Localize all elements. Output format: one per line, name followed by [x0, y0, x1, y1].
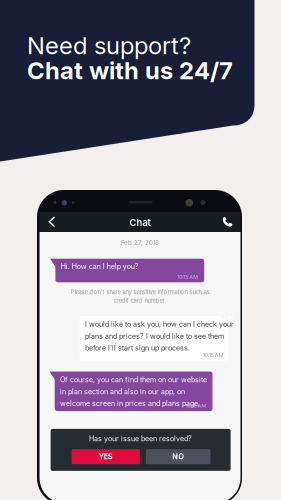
staticText: 10:15 AM: [203, 352, 224, 358]
staticText: before I'll start sign up process.: [85, 344, 190, 352]
staticText: welcome screen in prices and plans page.: [60, 399, 200, 408]
button[interactable]: NO: [146, 449, 210, 464]
staticText: 10:16 AM: [185, 402, 206, 409]
staticText: Hi. How can I help you?: [61, 262, 139, 271]
staticText: in plan section and also in our app, on: [60, 387, 185, 396]
button[interactable]: Call: [216, 211, 238, 232]
staticText: YES: [99, 452, 113, 461]
staticText: Need support?: [27, 31, 191, 60]
staticText: Chat with us 24/7: [27, 56, 233, 85]
staticText: NO: [172, 452, 184, 461]
button[interactable]: YES: [72, 449, 140, 464]
staticText: credit card number.: [113, 297, 166, 304]
staticText: Of course, you can find them on our webs…: [60, 375, 207, 384]
button[interactable]: Back: [41, 211, 63, 232]
staticText: plans and prices? I would like to see th…: [85, 332, 224, 340]
staticText: Feb 27, 2018: [121, 239, 159, 246]
staticText: 10:15 AM: [177, 274, 198, 280]
staticText: Has your issue been resolved?: [89, 434, 192, 443]
staticText: Chat: [129, 217, 150, 228]
staticText: I would like to ask you, how can I check…: [85, 320, 234, 328]
staticText: Please don't share any sensitive informa…: [70, 288, 209, 296]
